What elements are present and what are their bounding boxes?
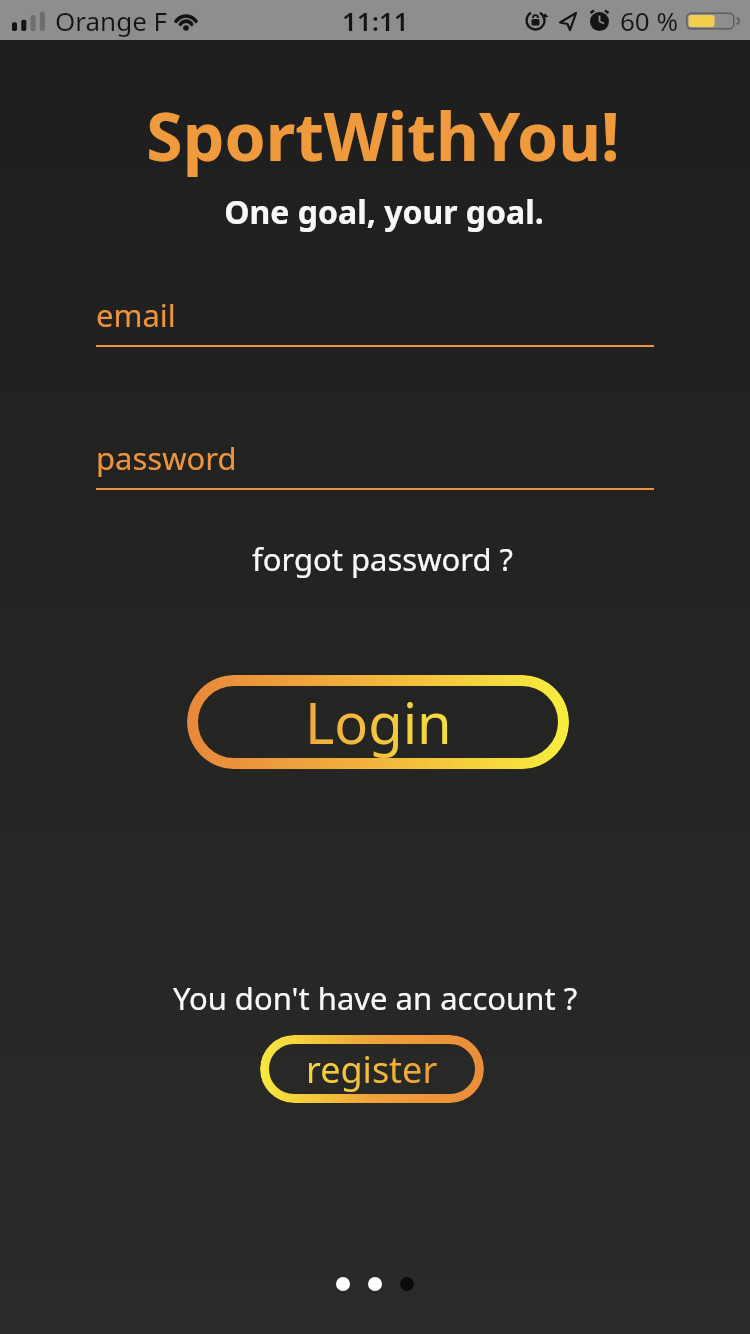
staticText: 11:11 xyxy=(342,3,409,38)
staticText: Login xyxy=(305,684,452,760)
staticText: password xyxy=(96,437,237,479)
button[interactable]: Login xyxy=(187,675,569,769)
button[interactable]: forgot password ? xyxy=(252,538,514,580)
staticText: register xyxy=(306,1045,438,1094)
button[interactable]: register xyxy=(260,1035,484,1103)
staticText: You don't have an account ? xyxy=(0,977,750,1019)
staticText: One goal, your goal. xyxy=(9,190,750,234)
staticText: 60 % xyxy=(620,3,679,38)
button[interactable] xyxy=(336,1277,350,1291)
staticText: SportWithYou! xyxy=(8,90,750,180)
button[interactable]: password xyxy=(96,437,654,490)
staticText: Orange F xyxy=(55,3,168,38)
button[interactable]: email xyxy=(96,294,654,347)
staticText: forgot password ? xyxy=(252,538,514,580)
button[interactable] xyxy=(368,1277,382,1291)
button[interactable] xyxy=(400,1277,414,1291)
staticText: email xyxy=(96,294,176,336)
